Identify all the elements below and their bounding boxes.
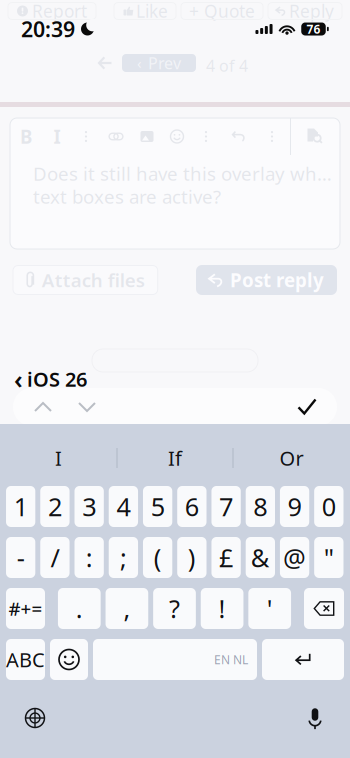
staticText: Report [32,0,87,22]
button[interactable]: ‹ [122,54,196,72]
button[interactable]: EN NL [93,639,257,680]
staticText: . [76,592,83,625]
button[interactable]: Done [285,389,329,425]
staticText: B [20,124,32,149]
button[interactable]: 1 [6,486,35,527]
staticText: I [55,445,62,471]
staticText: ? [169,592,180,625]
staticText: 9 [288,490,302,523]
button[interactable]: Back [98,56,112,70]
button[interactable]: I [0,440,116,476]
staticText: 4 [116,490,130,523]
button[interactable]: Dictate [295,698,335,738]
button[interactable]: £ [211,537,241,578]
staticText: 3 [82,490,96,523]
staticText: text boxes are active? [33,184,221,209]
button[interactable]: Insert image [132,118,162,154]
staticText: @ [283,541,306,574]
button[interactable]: - [6,537,35,578]
button[interactable]: . [58,588,101,629]
staticText: Does it still have this overlay when [33,161,333,186]
button[interactable] [304,588,344,629]
button[interactable]: I [42,118,72,154]
staticText: Or [279,445,303,471]
button[interactable]: Reply [268,2,342,19]
staticText: EN NL [214,651,248,667]
button[interactable]: " [314,537,343,578]
staticText: #+= [8,596,42,621]
staticText: iOS 26 [27,366,87,392]
staticText: " [324,541,334,574]
staticText: 20:39 [21,15,75,43]
button[interactable]: Change keyboard [15,698,55,738]
button[interactable]: / [40,537,70,578]
button[interactable]: @ [280,537,309,578]
staticText: Prev [148,52,181,74]
staticText: & [251,541,270,574]
button[interactable]: 0 [314,486,343,527]
staticText: 5 [151,490,165,523]
button[interactable]: : [74,537,104,578]
staticText: 0 [322,490,336,523]
button[interactable]: 4 [109,486,138,527]
staticText: 7 [219,490,233,523]
button[interactable]: B [10,118,42,154]
staticText: ABC [6,646,45,673]
staticText: + Quote [189,0,255,22]
button[interactable]: 5 [143,486,172,527]
button[interactable]: Attach files [13,265,158,294]
staticText: 6 [185,490,199,523]
button[interactable]: ! [201,588,243,629]
button[interactable]: ; [109,537,138,578]
button[interactable]: ) [177,537,206,578]
button[interactable]: Preview [291,118,340,155]
staticText: ' [267,592,273,625]
button[interactable]: ( [143,537,172,578]
staticText: ( [154,541,162,574]
button[interactable]: Next field [65,389,109,425]
button[interactable]: 8 [246,486,275,527]
staticText: ; [120,541,127,574]
button[interactable]: 9 [280,486,309,527]
button[interactable]: Report [8,2,96,19]
button[interactable]: , [106,588,148,629]
staticText: If [168,445,182,471]
button[interactable]: ' [248,588,291,629]
button[interactable]: Insert emoji [162,118,192,154]
staticText: Reply [289,0,334,22]
staticText: 8 [253,490,267,523]
staticText: ‹ [14,362,23,396]
button[interactable]: Post reply [196,265,337,295]
button[interactable]: Undo [220,118,258,154]
button[interactable]: + Quote [181,2,263,19]
staticText: , [123,592,130,625]
staticText: : [86,541,93,574]
button[interactable]: ABC [6,639,45,680]
button[interactable]: Previous field [21,389,65,425]
button[interactable]: Like [114,2,176,19]
staticText: 4 of 4 [206,55,248,76]
button[interactable]: & [246,537,275,578]
button[interactable]: ‹ [14,369,87,389]
staticText: 76 [306,21,320,37]
button[interactable]: ? [153,588,196,629]
button[interactable]: #+= [6,588,45,629]
staticText: 2 [48,490,62,523]
button[interactable]: 6 [177,486,206,527]
button[interactable]: If [117,440,232,476]
button[interactable]: Or [233,440,349,476]
staticText: ‹ [137,53,142,73]
button[interactable] [50,639,88,680]
staticText: £ [219,541,233,574]
staticText: / [50,541,59,574]
button[interactable]: 3 [74,486,104,527]
button[interactable]: 7 [211,486,241,527]
staticText: 1 [14,490,28,523]
button[interactable] [262,639,344,680]
staticText: I [53,124,60,149]
button[interactable]: Insert link [100,118,132,154]
button[interactable]: 2 [40,486,70,527]
